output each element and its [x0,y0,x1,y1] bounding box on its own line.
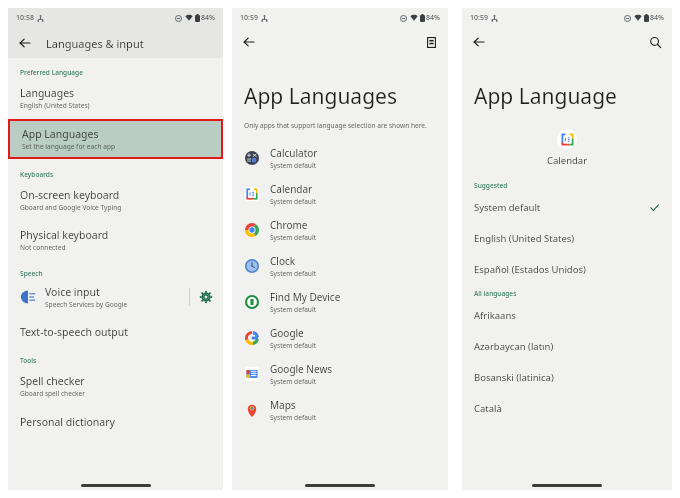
other: Voice input settings [199,290,213,304]
staticText: On-screen keyboard [20,188,120,202]
staticText: Calculator [270,146,318,160]
staticText: App Languages [22,127,99,141]
staticText: App Language [474,82,617,111]
button[interactable]: Text-to-speech output [8,318,223,346]
button[interactable]: On-screen keyboard [8,181,223,219]
button[interactable]: Español (Estados Unidos) [462,254,672,285]
button[interactable]: System default [462,192,672,223]
staticText: Maps [270,398,296,412]
staticText: Afrikaans [474,309,660,322]
staticText: Calendar [547,154,588,167]
button[interactable]: Back [472,35,486,49]
staticText: System default [270,233,317,242]
button[interactable]: Clock [232,248,448,284]
staticText: Only apps that support language selectio… [244,121,427,130]
button[interactable]: Azərbaycan (latın) [462,331,672,362]
staticText: Set the language for each app [22,142,115,151]
staticText: Spell checker [20,374,85,388]
staticText: Preferred Language [20,68,83,77]
staticText: English (United States) [20,101,90,110]
staticText: Català [474,402,660,415]
staticText: 84% [650,13,664,23]
button[interactable]: Bosanski (latinica) [462,362,672,393]
staticText: 84% [426,13,440,23]
staticText: System default [270,377,317,386]
button[interactable]: Calculator [232,140,448,176]
staticText: Chrome [270,218,308,232]
staticText: System default [270,413,317,422]
staticText: Azərbaycan (latın) [474,340,660,353]
button[interactable]: Languages [8,79,223,117]
staticText: System default [270,269,317,278]
staticText: System default [270,305,317,314]
staticText: Keyboards [20,170,54,179]
button[interactable]: Calendar [232,176,448,212]
staticText: System default [474,201,649,214]
staticText: 10:58 [16,13,34,23]
staticText: Clock [270,254,296,268]
staticText: Speech Services by Google [45,300,128,309]
button[interactable]: Personal dictionary [8,408,223,436]
other: Back [242,35,256,49]
other: Back [18,36,32,50]
staticText: Not connected [20,243,66,252]
staticText: Find My Device [270,290,341,304]
staticText: Bosanski (latinica) [474,371,660,384]
staticText: 10:59 [240,13,258,23]
staticText: Text-to-speech output [20,325,129,339]
staticText: 84% [201,13,215,23]
staticText: Calendar [270,182,313,196]
button[interactable]: Physical keyboard [8,221,223,259]
staticText: Speech [20,269,43,278]
other: Help [425,36,438,49]
staticText: Languages & input [46,36,144,51]
staticText: Google News [270,362,333,376]
staticText: All languages [474,289,517,298]
button[interactable]: Back [18,36,32,50]
button[interactable]: Català [462,393,672,424]
button[interactable]: Search [649,36,662,49]
button[interactable]: Back [242,35,256,49]
staticText: Gboard spell checker [20,389,86,398]
staticText: Google [270,326,304,340]
staticText: Suggested [474,181,508,190]
other: Search [649,36,662,49]
button[interactable]: Afrikaans [462,300,672,331]
button[interactable]: Maps [232,392,448,428]
staticText: Languages [20,86,75,100]
staticText: English (United States) [474,232,660,245]
button[interactable]: Google [232,320,448,356]
staticText: Physical keyboard [20,228,109,242]
staticText: Español (Estados Unidos) [474,263,660,276]
button[interactable]: Help [425,36,438,49]
button[interactable]: Find My Device [232,284,448,320]
button[interactable]: Google News [232,356,448,392]
staticText: Gboard and Google Voice Typing [20,203,122,212]
staticText: System default [270,341,317,350]
staticText: System default [270,161,317,170]
staticText: App Languages [244,82,397,111]
button[interactable]: App Languages [10,121,221,157]
staticText: Tools [20,356,37,365]
button[interactable]: Chrome [232,212,448,248]
button[interactable]: English (United States) [462,223,672,254]
staticText: Voice input [45,285,100,299]
other: Back [472,35,486,49]
button[interactable]: Spell checker [8,367,223,405]
button[interactable]: Voice input [8,280,223,314]
button[interactable]: Voice input settings [199,290,213,304]
staticText: Personal dictionary [20,415,115,429]
staticText: System default [270,197,317,206]
staticText: 10:59 [470,13,488,23]
